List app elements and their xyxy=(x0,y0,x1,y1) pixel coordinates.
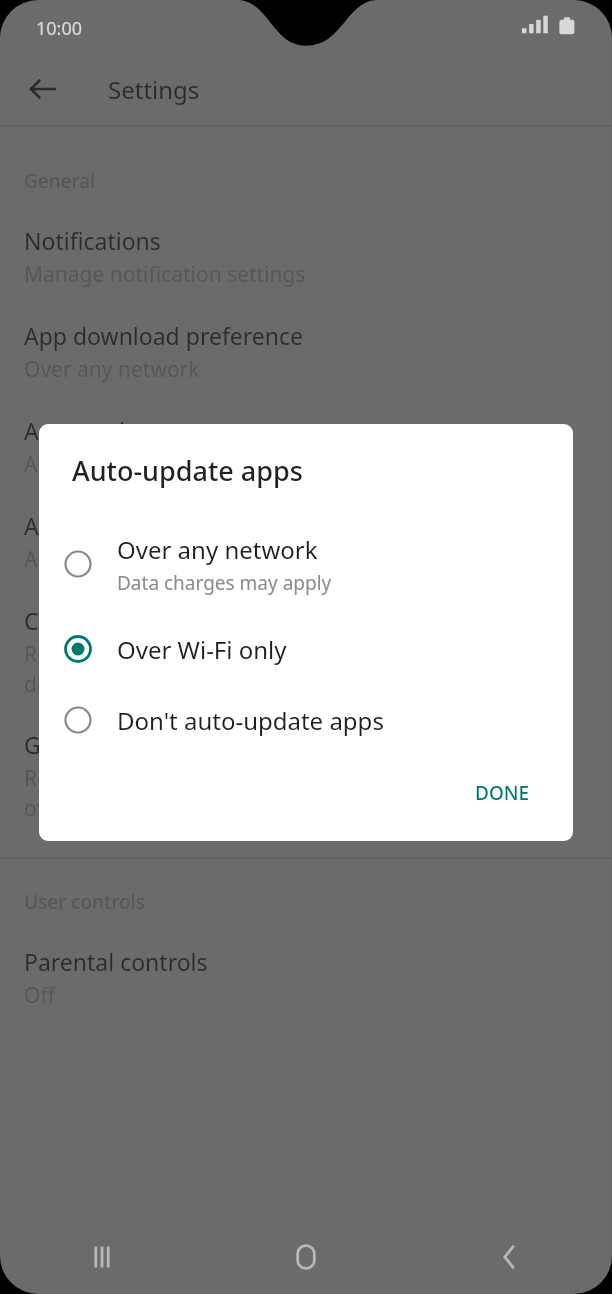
staticText: Don't auto-update apps xyxy=(117,704,384,737)
staticText: Data charges may apply xyxy=(117,570,332,596)
staticText: App download preference xyxy=(24,320,304,351)
button[interactable]: DONE xyxy=(459,772,546,814)
staticText: 10:00 xyxy=(36,16,83,41)
staticText: Google Play preferences xyxy=(24,729,287,760)
staticText: Remove history in your wishlist, the Bet… xyxy=(24,764,560,822)
button[interactable]: Back xyxy=(18,65,66,113)
staticText: Auto-play videos xyxy=(24,510,203,541)
staticText: Auto-update apps over Wi-Fi only xyxy=(24,450,351,479)
staticText: Manage notification settings xyxy=(24,260,306,289)
button[interactable]: Over Wi-Fi only xyxy=(39,619,573,679)
staticText: Settings xyxy=(108,73,200,106)
button[interactable]: Auto-play videos xyxy=(0,479,612,574)
staticText: Off xyxy=(24,981,55,1010)
staticText: General xyxy=(24,168,96,194)
staticText: Clear local search history xyxy=(24,605,294,636)
staticText: Auto-play videos over Wi-Fi only xyxy=(24,545,338,574)
button[interactable]: App download preference xyxy=(0,289,612,384)
staticText: Auto-update apps xyxy=(24,415,218,446)
staticText: DONE xyxy=(475,780,530,806)
staticText: Parental controls xyxy=(24,946,208,977)
staticText: Remove all the searches you have perform… xyxy=(24,640,563,698)
button[interactable]: Auto-update apps xyxy=(0,384,612,479)
button[interactable]: Notifications xyxy=(0,194,612,289)
button[interactable]: Parental controls xyxy=(0,915,612,1010)
button[interactable]: Recent apps xyxy=(0,1220,204,1294)
button[interactable]: Google Play preferences xyxy=(0,698,612,822)
staticText: Over Wi-Fi only xyxy=(117,633,287,666)
staticText: Auto-update apps xyxy=(72,452,303,489)
button[interactable]: Don't auto-update apps xyxy=(39,690,573,750)
staticText: Over any network xyxy=(117,533,318,566)
button[interactable]: Home xyxy=(204,1220,408,1294)
button[interactable]: Over any network xyxy=(39,527,573,601)
staticText: Notifications xyxy=(24,225,161,256)
staticText: Over any network xyxy=(24,355,200,384)
button[interactable]: Clear local search history xyxy=(0,574,612,698)
staticText: User controls xyxy=(24,889,145,915)
button[interactable]: Back xyxy=(408,1220,612,1294)
